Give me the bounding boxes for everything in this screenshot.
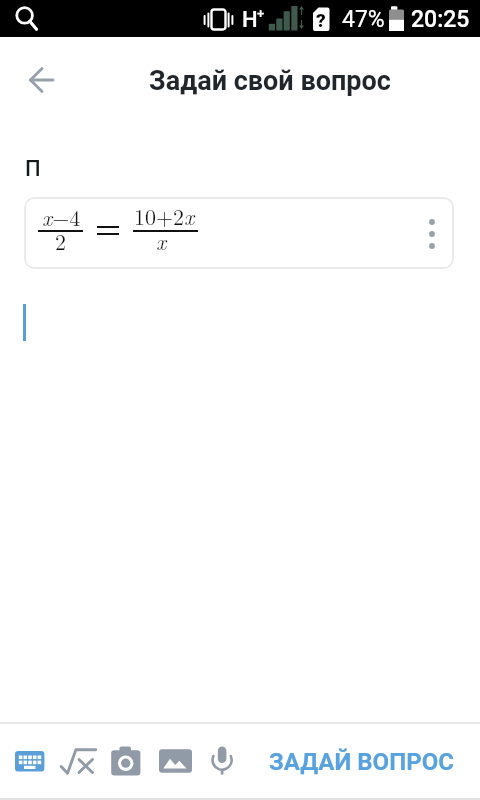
button[interactable] xyxy=(198,737,246,785)
staticText: + xyxy=(257,6,265,21)
staticText: 2 xyxy=(55,225,67,256)
staticText: П xyxy=(25,156,41,182)
button[interactable] xyxy=(18,59,66,107)
staticText: H xyxy=(242,7,258,33)
staticText: 20:25 xyxy=(411,6,470,33)
button[interactable]: x−4 xyxy=(24,197,454,269)
button[interactable] xyxy=(102,737,150,785)
staticText: Задай свой вопрос xyxy=(149,65,391,97)
staticText: x−4 xyxy=(42,201,81,232)
staticText: 47% xyxy=(342,6,385,33)
button[interactable] xyxy=(410,197,454,269)
staticText: ЗАДАЙ ВОПРОС xyxy=(269,748,454,776)
button[interactable] xyxy=(54,737,102,785)
button[interactable] xyxy=(151,737,199,785)
staticText: ? xyxy=(316,9,326,31)
button[interactable] xyxy=(6,737,54,785)
button[interactable]: ЗАДАЙ ВОПРОС xyxy=(269,748,454,776)
staticText: x xyxy=(156,225,167,256)
staticText: 10+2x xyxy=(134,200,195,231)
